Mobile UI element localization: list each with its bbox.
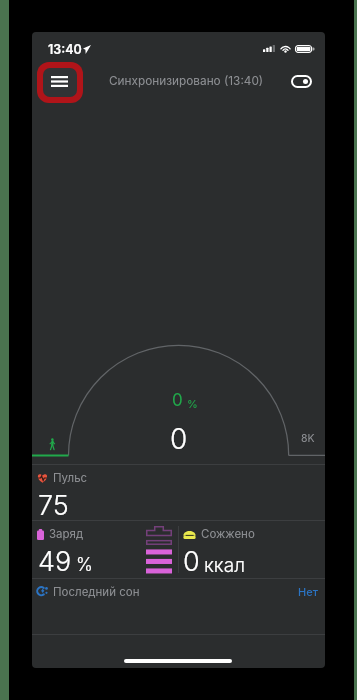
button[interactable]: Сожжено bbox=[179, 521, 325, 578]
staticText: % bbox=[187, 397, 198, 410]
staticText: Нет bbox=[298, 585, 318, 598]
button[interactable]: Последний сон bbox=[32, 579, 325, 604]
staticText: Пульс bbox=[53, 471, 88, 485]
staticText: % bbox=[76, 554, 93, 576]
button[interactable]: Пульс bbox=[32, 465, 325, 520]
staticText: Сожжено bbox=[201, 527, 255, 541]
button[interactable]: Open navigation menu bbox=[43, 68, 77, 97]
staticText: 0 bbox=[170, 422, 188, 456]
staticText: Заряд bbox=[49, 527, 84, 541]
staticText: 0 bbox=[172, 390, 183, 411]
staticText: 8K bbox=[301, 432, 315, 445]
staticText: Последний сон bbox=[53, 585, 140, 599]
staticText: 0 bbox=[183, 545, 200, 578]
button[interactable]: Заряд bbox=[32, 521, 178, 578]
staticText: 13:40 bbox=[48, 42, 82, 57]
staticText: 75 bbox=[38, 489, 69, 522]
staticText: ккал bbox=[204, 554, 245, 577]
button[interactable]: Connection toggle bbox=[287, 72, 315, 90]
staticText: 49 bbox=[38, 545, 72, 578]
staticText: Синхронизировано (13:40) bbox=[109, 74, 264, 88]
